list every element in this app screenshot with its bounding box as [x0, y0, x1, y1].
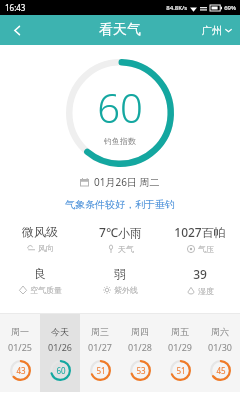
staticText: 01/30 — [208, 341, 232, 353]
staticText: 今天 — [51, 326, 69, 337]
button[interactable]: 1027百帕 — [160, 224, 240, 254]
staticText: 60 — [97, 80, 143, 134]
button[interactable]: 周一 — [0, 314, 40, 392]
button[interactable]: 今天 — [40, 314, 80, 392]
button[interactable]: Back — [0, 15, 34, 45]
staticText: 微风级 — [22, 224, 58, 239]
staticText: 16:43 — [5, 2, 26, 13]
staticText: 01月26日 周二 — [94, 175, 160, 189]
button[interactable]: 弱 — [80, 266, 160, 295]
staticText: 7℃小雨 — [99, 224, 142, 240]
staticText: 周一 — [11, 326, 29, 337]
staticText: 01/26 — [48, 341, 72, 353]
staticText: 45 — [216, 365, 226, 376]
staticText: 良 — [34, 266, 46, 281]
button[interactable]: 39 — [160, 266, 240, 296]
staticText: 气象条件较好，利于垂钓 — [0, 198, 240, 211]
button[interactable]: 广州 — [194, 15, 240, 45]
button[interactable]: 周三 — [80, 314, 120, 392]
staticText: 周三 — [91, 326, 109, 337]
staticText: 空气质量 — [30, 285, 62, 295]
staticText: 周六 — [211, 326, 229, 337]
staticText: 53 — [136, 365, 146, 376]
staticText: 周四 — [131, 326, 149, 337]
button[interactable]: 周五 — [160, 314, 200, 392]
staticText: 湿度 — [198, 286, 214, 296]
staticText: 天气 — [118, 244, 134, 254]
button[interactable]: 周四 — [120, 314, 160, 392]
staticText: 看天气 — [99, 21, 141, 39]
staticText: 紫外线 — [114, 285, 138, 295]
staticText: 39 — [193, 266, 207, 282]
staticText: 01/29 — [168, 341, 192, 353]
staticText: 01/27 — [88, 341, 112, 353]
button[interactable]: 微风级 — [0, 224, 80, 253]
staticText: 广州 — [202, 24, 222, 37]
staticText: 弱 — [114, 266, 126, 281]
button[interactable]: 7℃小雨 — [80, 224, 160, 254]
staticText: 51 — [96, 365, 106, 376]
staticText: 风向 — [38, 243, 54, 253]
staticText: 01/25 — [8, 341, 32, 353]
staticText: 气压 — [198, 244, 214, 254]
staticText: 43 — [16, 365, 26, 376]
staticText: 69% — [224, 4, 236, 12]
staticText: 51 — [176, 365, 186, 376]
staticText: 1027百帕 — [174, 224, 226, 240]
button[interactable]: 周六 — [200, 314, 240, 392]
staticText: 60 — [56, 365, 66, 376]
staticText: 钓鱼指数 — [104, 136, 136, 146]
staticText: 84.8K/s — [166, 4, 187, 12]
staticText: 周五 — [171, 326, 189, 337]
button[interactable]: 良 — [0, 266, 80, 295]
staticText: 01/28 — [128, 341, 152, 353]
